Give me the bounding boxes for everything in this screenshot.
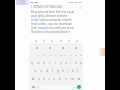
staticText: w bbox=[37, 61, 40, 65]
button[interactable]: 2 bbox=[35, 51, 41, 59]
staticText: g bbox=[57, 69, 59, 73]
staticText: b bbox=[59, 77, 61, 81]
button[interactable]: Suggestion 1 bbox=[47, 45, 52, 50]
button[interactable]: k bbox=[70, 67, 75, 75]
button[interactable]: Suggestion 0 bbox=[34, 45, 39, 50]
staticText: Unlike bbox=[31, 18, 39, 22]
staticText: f bbox=[52, 69, 53, 73]
staticText: 5 bbox=[55, 54, 57, 57]
button[interactable]: Suggestion 3 bbox=[73, 45, 78, 50]
button[interactable]: More options bbox=[80, 6, 83, 9]
button[interactable]: y bbox=[58, 59, 63, 67]
button[interactable]: q bbox=[29, 59, 35, 67]
staticText: i bbox=[70, 61, 71, 65]
button[interactable]: Comma bbox=[36, 84, 41, 90]
staticText: s bbox=[40, 69, 42, 73]
button[interactable]: 8 bbox=[68, 51, 73, 59]
button[interactable]: Italic bbox=[41, 38, 46, 43]
button[interactable]: l bbox=[75, 67, 80, 75]
button[interactable]: 1 bbox=[29, 51, 35, 59]
staticText: 2 bbox=[37, 54, 39, 57]
staticText: c bbox=[48, 77, 50, 81]
button[interactable]: v bbox=[51, 75, 57, 83]
staticText: 3 bbox=[43, 54, 45, 57]
staticText: videos and audio content bbox=[39, 18, 72, 22]
staticText: k bbox=[72, 69, 74, 73]
button[interactable]: p bbox=[78, 59, 83, 67]
button[interactable]: 7 bbox=[63, 51, 68, 59]
button[interactable]: 5 bbox=[53, 51, 58, 59]
staticText: 4 bbox=[49, 54, 51, 57]
staticText: and rights, whoever believes. bbox=[31, 14, 68, 18]
button[interactable]: 6 bbox=[58, 51, 63, 59]
button[interactable]: u bbox=[63, 59, 68, 67]
staticText: z bbox=[38, 77, 40, 81]
button[interactable]: r bbox=[47, 59, 53, 67]
button[interactable]: h bbox=[60, 67, 65, 75]
staticText: y bbox=[60, 61, 62, 65]
staticText: q bbox=[31, 61, 33, 65]
staticText: e bbox=[43, 61, 45, 65]
button[interactable]: t bbox=[53, 59, 58, 67]
staticText: j bbox=[67, 69, 68, 73]
staticText: m bbox=[71, 77, 74, 81]
button[interactable]: Symbols bbox=[30, 84, 36, 90]
button[interactable]: w bbox=[35, 59, 41, 67]
button[interactable]: 1. ATTACK ON TITAN 2023 bbox=[31, 5, 83, 9]
staticText: d bbox=[46, 69, 48, 73]
button[interactable]: 4 bbox=[47, 51, 53, 59]
staticText: Find a video - you can download bbox=[31, 22, 72, 26]
button[interactable]: Backspace bbox=[75, 75, 83, 83]
button[interactable]: n bbox=[63, 75, 69, 83]
button[interactable]: Period bbox=[72, 84, 77, 90]
button[interactable]: m bbox=[69, 75, 75, 83]
button[interactable]: 3 bbox=[41, 51, 47, 59]
staticText: x bbox=[43, 77, 45, 81]
button[interactable]: x bbox=[41, 75, 46, 83]
staticText: That love is found and attack it bbox=[31, 30, 70, 34]
button[interactable]: Send bbox=[77, 85, 81, 89]
staticText: o bbox=[75, 61, 77, 65]
button[interactable]: Shift bbox=[29, 75, 36, 83]
button[interactable]: c bbox=[46, 75, 51, 83]
button[interactable]: g bbox=[55, 67, 60, 75]
button[interactable]: e bbox=[41, 59, 47, 67]
staticText: e.com with you mind bbox=[47, 26, 74, 30]
staticText: l bbox=[77, 69, 78, 73]
button[interactable]: o bbox=[73, 59, 78, 67]
button[interactable]: More bbox=[74, 38, 79, 43]
button[interactable]: 9 bbox=[73, 51, 78, 59]
button[interactable]: b bbox=[57, 75, 63, 83]
button[interactable]: f bbox=[50, 67, 55, 75]
staticText: All people are born free and equal bbox=[31, 10, 74, 14]
button[interactable]: Suggestion 2 bbox=[60, 45, 65, 50]
button[interactable]: d bbox=[44, 67, 50, 75]
staticText: 6 bbox=[60, 54, 62, 57]
button[interactable]: Underline bbox=[49, 38, 54, 43]
staticText: t bbox=[55, 61, 56, 65]
button[interactable]: Image bbox=[66, 38, 71, 43]
button[interactable]: j bbox=[65, 67, 70, 75]
staticText: 7 bbox=[65, 54, 67, 57]
button[interactable]: 0 bbox=[78, 51, 83, 59]
staticText: r bbox=[49, 61, 51, 65]
staticText: 1. ATTACK ON TITAN 2023 bbox=[31, 5, 63, 9]
button[interactable]: z bbox=[36, 75, 41, 83]
button[interactable]: Link bbox=[58, 38, 63, 43]
button[interactable]: i bbox=[68, 59, 73, 67]
staticText: h bbox=[62, 69, 64, 73]
button[interactable]: Bold bbox=[33, 38, 38, 43]
staticText: 0 bbox=[80, 54, 82, 57]
staticText: 9 bbox=[75, 54, 77, 57]
staticText: 8 bbox=[70, 54, 72, 57]
staticText: n bbox=[65, 77, 67, 81]
staticText: Link: bbox=[31, 26, 37, 30]
staticText: exampl bbox=[37, 26, 47, 30]
staticText: v bbox=[53, 77, 55, 81]
staticText: p bbox=[80, 61, 82, 65]
button[interactable]: a bbox=[32, 67, 38, 75]
staticText: u bbox=[65, 61, 67, 65]
button[interactable]: s bbox=[38, 67, 44, 75]
staticText: a bbox=[34, 69, 36, 73]
